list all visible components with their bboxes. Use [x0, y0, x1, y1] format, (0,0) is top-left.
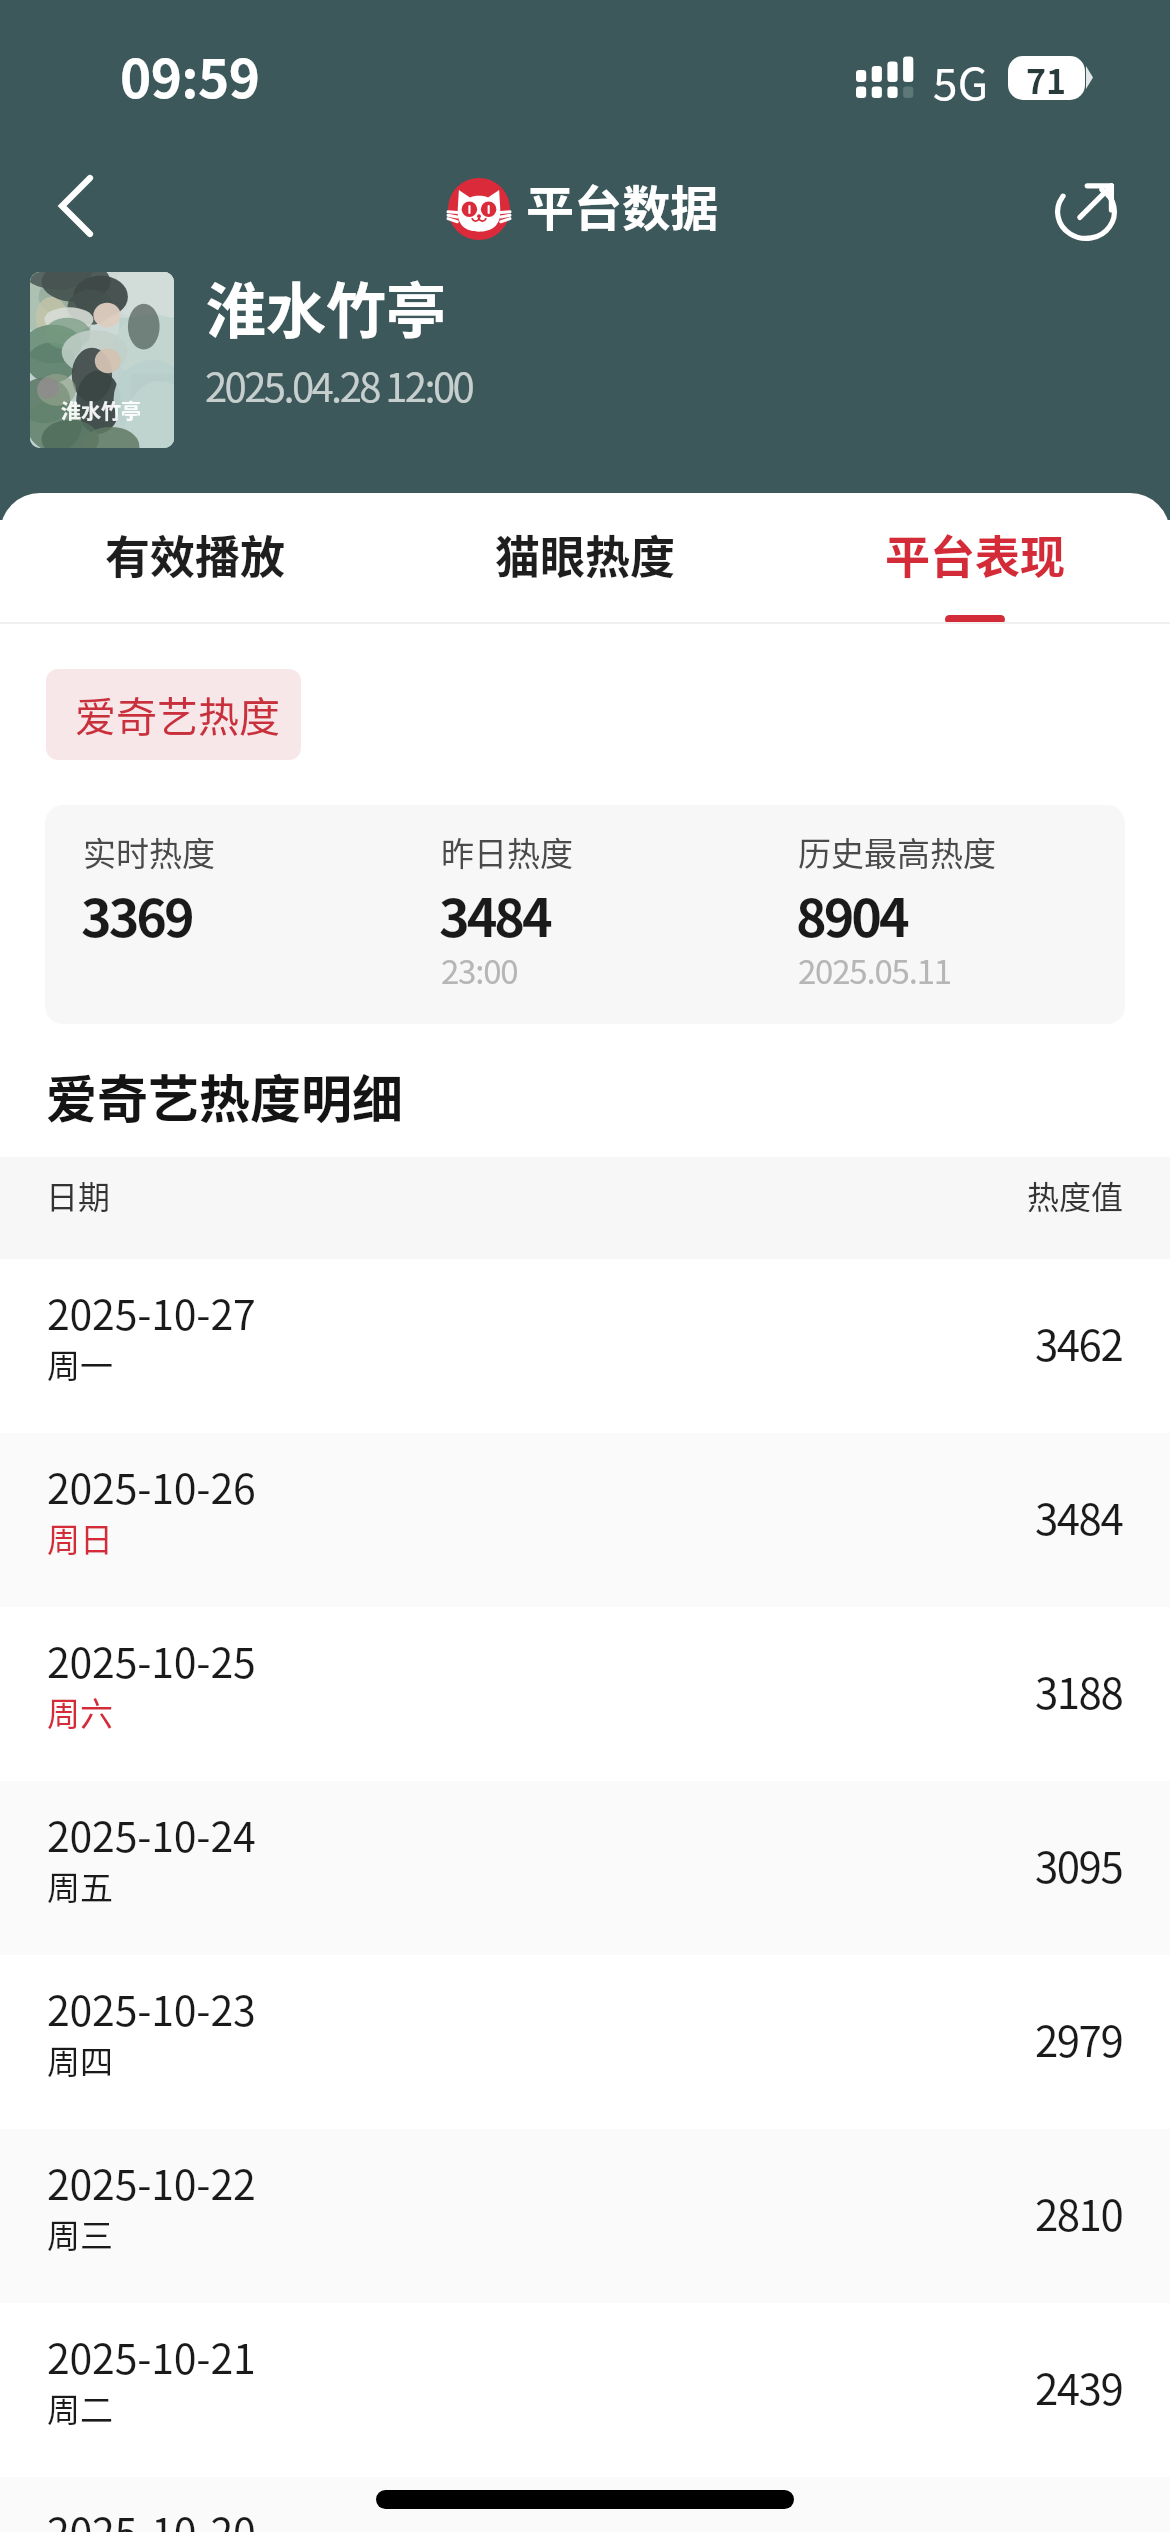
button[interactable]: Share: [1036, 160, 1136, 260]
staticText: 3484: [439, 877, 550, 952]
staticText: 8904: [796, 877, 907, 952]
button[interactable]: 猫眼热度: [390, 493, 780, 624]
button[interactable]: 淮水竹亭: [20, 262, 720, 458]
staticText: 有效播放: [105, 522, 286, 587]
staticText: 昨日热度: [441, 828, 573, 876]
staticText: 09:59: [120, 37, 260, 114]
staticText: 3484: [1035, 1486, 1123, 1547]
staticText: 猫眼热度: [495, 522, 676, 587]
staticText: 周二: [47, 2384, 113, 2432]
staticText: 2025-10-21: [47, 2326, 256, 2385]
staticText: 历史最高热度: [798, 828, 996, 876]
button[interactable]: 平台表现: [780, 493, 1170, 624]
staticText: 爱奇艺热度: [75, 684, 280, 743]
staticText: 2025-10-22: [47, 2152, 256, 2211]
staticText: 2025.05.11: [798, 946, 951, 994]
staticText: 淮水竹亭: [61, 396, 141, 425]
staticText: 日期: [46, 1172, 111, 1218]
staticText: 3188: [1035, 1660, 1123, 1721]
staticText: 周四: [47, 2036, 113, 2084]
staticText: 2025-10-26: [47, 1456, 256, 1515]
button[interactable]: 2025-10-20: [0, 2477, 1170, 2532]
button[interactable]: 2025-10-26: [0, 1433, 1170, 1607]
staticText: 2810: [1035, 2182, 1123, 2243]
staticText: 2025-10-25: [47, 1630, 256, 1689]
button[interactable]: 2025-10-25: [0, 1607, 1170, 1781]
staticText: 平台数据: [526, 170, 719, 240]
button[interactable]: 2025-10-23: [0, 1955, 1170, 2129]
staticText: 2025-10-20: [47, 2500, 256, 2532]
staticText: 平台表现: [885, 522, 1066, 587]
staticText: 5G: [933, 49, 989, 113]
button[interactable]: 2025-10-27: [0, 1259, 1170, 1433]
staticText: 周三: [47, 2210, 113, 2258]
button[interactable]: Back: [26, 156, 126, 256]
staticText: 71: [1026, 56, 1067, 99]
staticText: 周五: [47, 1862, 113, 1910]
staticText: 爱奇艺热度明细: [46, 1059, 404, 1133]
button[interactable]: 2025-10-24: [0, 1781, 1170, 1955]
button[interactable]: 爱奇艺热度: [46, 669, 301, 760]
staticText: 周六: [47, 1688, 113, 1736]
button[interactable]: 2025-10-21: [0, 2303, 1170, 2477]
staticText: 热度值: [1027, 1172, 1124, 1218]
staticText: 2025.04.28 12:00: [205, 356, 473, 414]
staticText: 23:00: [441, 946, 518, 994]
staticText: 2979: [1035, 2008, 1123, 2069]
staticText: 2025-10-24: [47, 1804, 256, 1863]
staticText: 2025-10-27: [47, 1282, 256, 1341]
staticText: 2439: [1035, 2356, 1123, 2417]
staticText: 实时热度: [83, 828, 215, 876]
staticText: 周一: [47, 1340, 113, 1388]
staticText: 周日: [47, 1514, 113, 1562]
staticText: 3462: [1035, 1312, 1123, 1373]
staticText: 淮水竹亭: [206, 263, 446, 350]
staticText: 3369: [81, 877, 192, 952]
staticText: 2025-10-23: [47, 1978, 256, 2037]
staticText: 3095: [1035, 1834, 1123, 1895]
button[interactable]: 2025-10-22: [0, 2129, 1170, 2303]
button[interactable]: 有效播放: [0, 493, 390, 624]
